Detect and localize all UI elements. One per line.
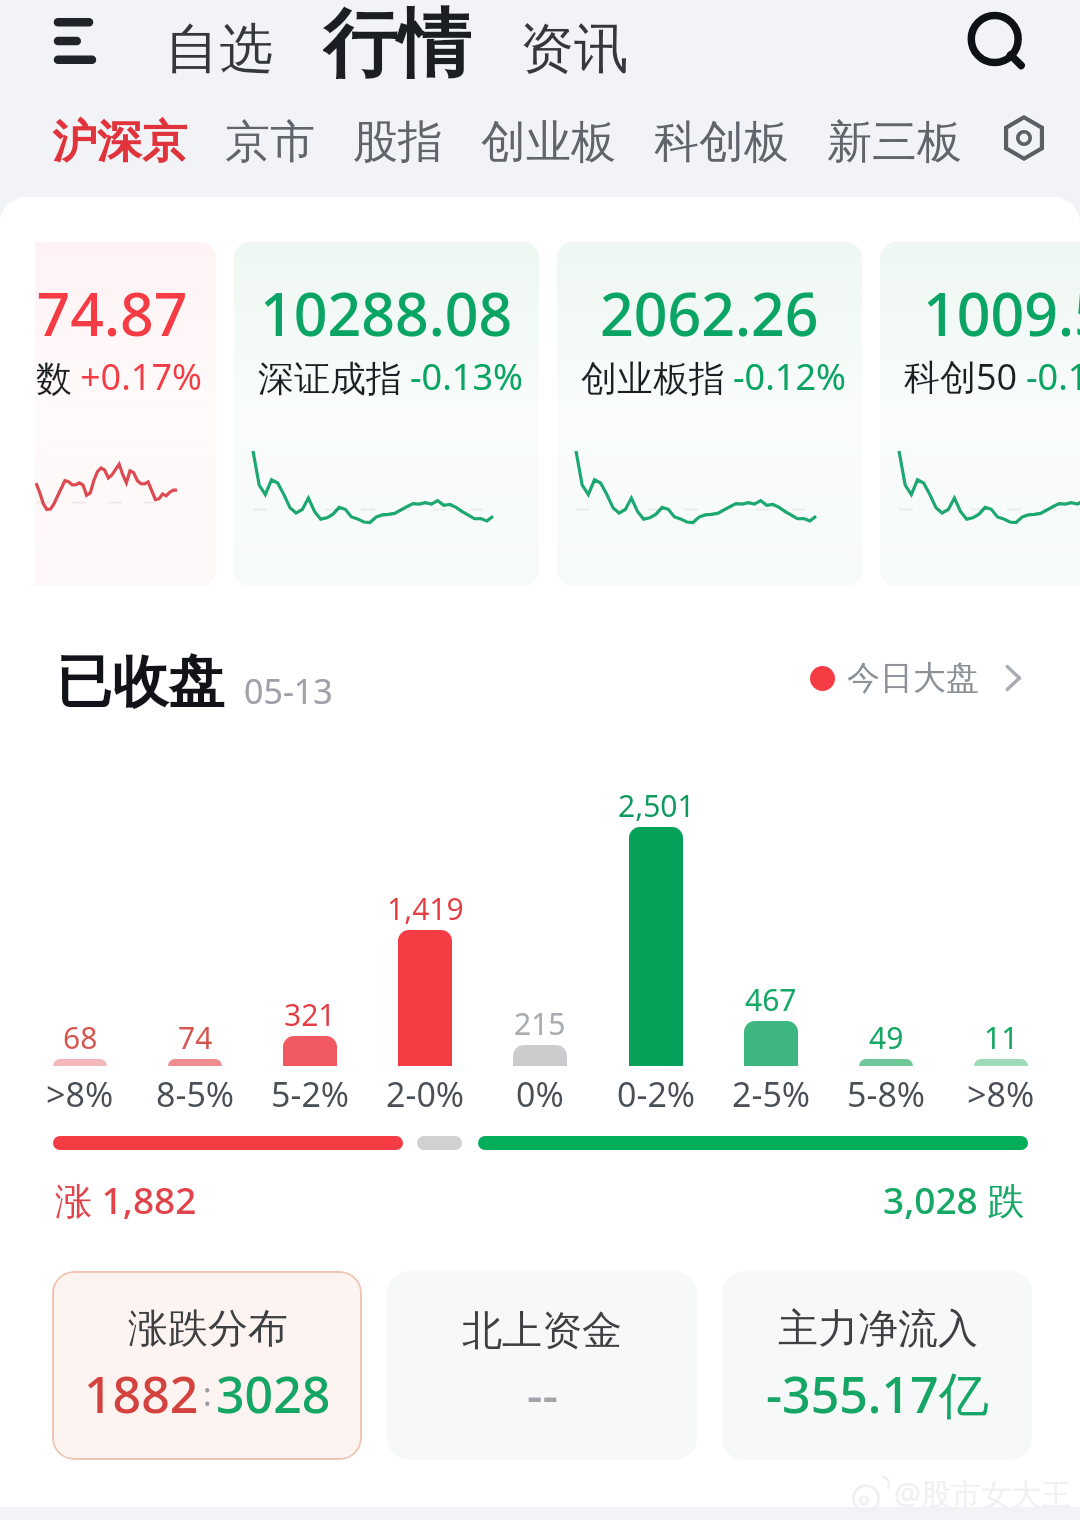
- staticText: 新三板: [827, 114, 962, 171]
- staticText: 主力净流入: [778, 1303, 978, 1353]
- button[interactable]: 沪深京: [46, 104, 193, 181]
- staticText: >8%: [46, 1071, 114, 1117]
- button[interactable]: 3374.87: [0, 242, 216, 586]
- staticText: 2,501: [618, 785, 695, 826]
- staticText: --: [527, 1362, 558, 1427]
- button[interactable]: 涨跌分布: [52, 1271, 362, 1460]
- staticText: 创业板指: [581, 356, 725, 401]
- button[interactable]: 科创板: [648, 104, 795, 181]
- staticText: 74: [178, 1017, 213, 1058]
- staticText: 3028: [216, 1360, 331, 1428]
- staticText: 北上资金: [462, 1305, 622, 1355]
- staticText: >8%: [967, 1071, 1035, 1117]
- staticText: 科创50: [904, 352, 1018, 401]
- button[interactable]: 资讯: [512, 7, 636, 91]
- staticText: 上证指数: [0, 356, 72, 401]
- staticText: 0%: [516, 1071, 564, 1117]
- staticText: 2-0%: [386, 1071, 465, 1117]
- staticText: +0.17%: [80, 352, 202, 401]
- staticText: 行情: [323, 0, 471, 79]
- staticText: 创业板: [481, 114, 616, 171]
- button[interactable]: 1009.52: [880, 242, 1080, 586]
- staticText: 1,419: [387, 888, 464, 929]
- staticText: @股市女大王: [894, 1473, 1071, 1514]
- staticText: 5-2%: [271, 1071, 350, 1117]
- staticText: 3374.87: [0, 273, 188, 353]
- staticText: 49: [869, 1017, 904, 1058]
- staticText: 8-5%: [156, 1071, 235, 1117]
- staticText: -0.18%: [1026, 352, 1080, 401]
- staticText: 05-13: [244, 668, 333, 714]
- staticText: 科创板: [654, 114, 789, 171]
- button[interactable]: Settings: [992, 106, 1056, 170]
- button[interactable]: 10288.08: [234, 242, 539, 586]
- button[interactable]: 新三板: [821, 104, 968, 181]
- staticText: 3,028 跌: [883, 1174, 1025, 1225]
- staticText: -355.17亿: [766, 1360, 989, 1428]
- staticText: 5-8%: [847, 1071, 926, 1117]
- staticText: 1009.52: [923, 273, 1080, 353]
- staticText: -0.13%: [410, 352, 523, 401]
- button[interactable]: 今日大盘: [810, 657, 1029, 699]
- staticText: 资讯: [520, 15, 628, 83]
- staticText: 11: [984, 1017, 1019, 1058]
- staticText: 2062.26: [600, 273, 819, 353]
- staticText: 215: [514, 1003, 566, 1044]
- staticText: 涨跌分布: [128, 1303, 288, 1353]
- staticText: 10288.08: [260, 273, 513, 353]
- staticText: 2-5%: [732, 1071, 811, 1117]
- staticText: 已收盘: [56, 647, 224, 718]
- staticText: 1882: [84, 1360, 199, 1428]
- staticText: 467: [745, 979, 797, 1020]
- staticText: 自选: [165, 15, 273, 83]
- button[interactable]: 京市: [219, 104, 321, 181]
- staticText: 今日大盘: [847, 657, 979, 699]
- staticText: -0.12%: [733, 352, 846, 401]
- staticText: 321: [284, 994, 336, 1035]
- button[interactable]: 北上资金: [387, 1271, 697, 1460]
- staticText: :: [203, 1372, 212, 1416]
- button[interactable]: Menu: [36, 6, 110, 76]
- button[interactable]: 创业板: [475, 104, 622, 181]
- button[interactable]: 主力净流入: [722, 1271, 1032, 1460]
- button[interactable]: 自选: [157, 7, 281, 91]
- button[interactable]: 2062.26: [557, 242, 862, 586]
- staticText: 68: [63, 1017, 98, 1058]
- staticText: 沪深京: [52, 114, 187, 171]
- button[interactable]: Search: [955, 0, 1041, 86]
- staticText: 股指: [353, 114, 443, 171]
- staticText: 京市: [225, 114, 315, 171]
- staticText: 涨 1,882: [55, 1174, 197, 1225]
- staticText: 深证成指: [258, 356, 402, 401]
- staticText: 0-2%: [617, 1071, 696, 1117]
- button[interactable]: 行情: [315, 0, 479, 87]
- button[interactable]: 股指: [347, 104, 449, 181]
